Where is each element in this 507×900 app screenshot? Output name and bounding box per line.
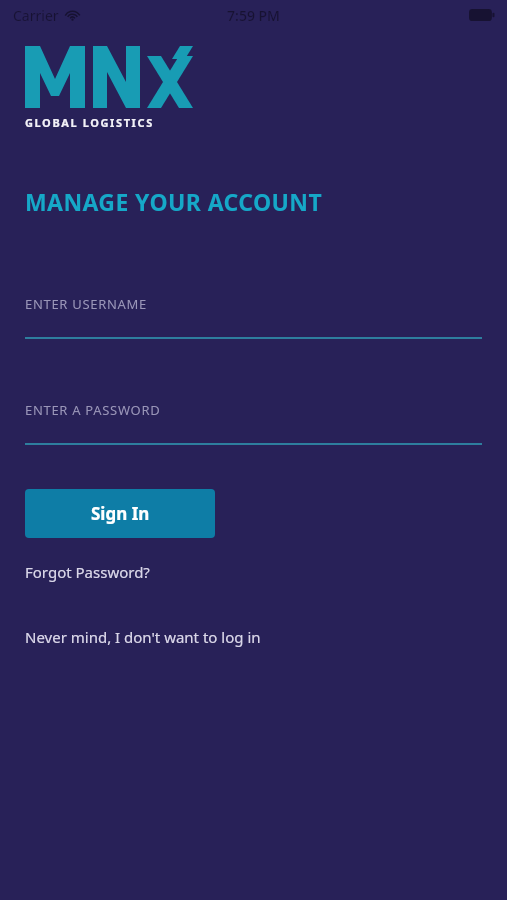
staticText: ENTER USERNAME [25, 295, 147, 313]
button[interactable]: Never mind, I don't want to log in [25, 623, 261, 651]
staticText: ENTER A PASSWORD [25, 401, 161, 419]
staticText: Never mind, I don't want to log in [25, 627, 261, 647]
button[interactable]: Sign In [25, 489, 215, 538]
staticText: Forgot Password? [25, 562, 150, 582]
button[interactable]: ENTER USERNAME [25, 295, 482, 339]
staticText: GLOBAL LOGISTICS [25, 115, 154, 130]
staticText: MANAGE YOUR ACCOUNT [25, 186, 323, 217]
button[interactable]: Forgot Password? [25, 558, 150, 586]
button[interactable]: ENTER A PASSWORD [25, 401, 482, 445]
staticText: 7:59 PM [227, 6, 280, 25]
staticText: Carrier [13, 6, 59, 25]
staticText: Sign In [91, 502, 150, 525]
